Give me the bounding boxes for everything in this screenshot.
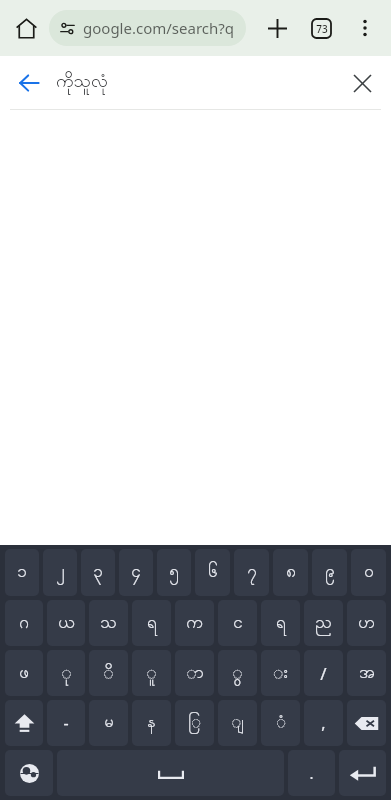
button[interactable]: မ [89, 700, 128, 746]
staticText: ၈ [286, 560, 296, 585]
staticText: ၅ [169, 560, 179, 585]
staticText: ၄ [131, 560, 141, 585]
button[interactable]: Change keyboard [5, 750, 53, 796]
staticText: ၃ [93, 560, 103, 585]
staticText: ံ [276, 711, 286, 735]
button[interactable]: ၈ [273, 549, 308, 596]
button[interactable]: ည [304, 600, 343, 646]
button[interactable]: google.com/search?q [49, 10, 246, 46]
button[interactable]: ံ [261, 700, 300, 746]
button[interactable]: ၃ [81, 549, 115, 596]
button[interactable]: ၀ [351, 549, 386, 596]
button[interactable]: ွ [218, 650, 257, 696]
button[interactable]: More options [343, 6, 387, 50]
button[interactable]: ယ [47, 600, 85, 646]
staticText: အ [359, 661, 375, 686]
staticText: google.com/search?q [83, 18, 234, 38]
staticText: ိ [103, 661, 114, 686]
button[interactable]: / [304, 650, 343, 696]
staticText: င [233, 611, 243, 636]
button[interactable]: . [288, 750, 335, 796]
staticText: ၇ [247, 560, 257, 585]
staticText: ရ [276, 611, 286, 636]
button[interactable]: ၄ [119, 549, 153, 596]
button[interactable]: ၅ [157, 549, 191, 596]
staticText: ြ [188, 711, 201, 735]
staticText: - [63, 712, 69, 734]
staticText: ု [61, 661, 72, 686]
staticText: မ [104, 711, 114, 735]
button[interactable]: အ [347, 650, 386, 696]
staticText: ၆ [208, 560, 218, 585]
staticText: န [147, 711, 156, 735]
staticText: ဖ [19, 661, 29, 686]
staticText: . [309, 763, 314, 783]
button[interactable]: Shift [5, 700, 43, 746]
staticText: ာ [186, 661, 204, 686]
button[interactable]: ြ [175, 700, 214, 746]
button[interactable]: , [304, 700, 343, 746]
button[interactable]: Home [6, 8, 46, 48]
button[interactable]: ၁ [5, 549, 39, 596]
button[interactable]: ျ [218, 700, 257, 746]
button[interactable]: ဖ [5, 650, 43, 696]
staticText: သ [100, 611, 117, 636]
button[interactable]: ၆ [195, 549, 230, 596]
button[interactable]: Enter [339, 750, 386, 796]
button[interactable]: New tab [255, 6, 299, 50]
button[interactable]: ူ [132, 650, 171, 696]
staticText: ွ [232, 661, 243, 686]
button[interactable]: န [132, 700, 171, 746]
staticText: ည [315, 611, 332, 636]
staticText: 73 [316, 22, 328, 36]
button[interactable]: သ [89, 600, 128, 646]
staticText: ၁ [17, 560, 27, 585]
button[interactable]: ဟ [347, 600, 386, 646]
button[interactable]: ာ [175, 650, 214, 696]
staticText: း [273, 661, 288, 686]
staticText: ၉ [325, 560, 335, 585]
button[interactable]: Clear [339, 60, 385, 106]
button[interactable]: ကိုသူလုံ [56, 56, 339, 109]
staticText: ျ [231, 711, 244, 735]
button[interactable]: Backspace [347, 700, 386, 746]
button[interactable]: Tabs, 73 open [299, 6, 343, 50]
staticText: ဟ [358, 611, 375, 636]
button[interactable]: း [261, 650, 300, 696]
button[interactable]: ၇ [234, 549, 269, 596]
button[interactable]: ရ [132, 600, 171, 646]
button[interactable]: ု [47, 650, 85, 696]
button[interactable]: ဂ [5, 600, 43, 646]
staticText: ကိုသူလုံ [56, 69, 108, 96]
button[interactable]: ၉ [312, 549, 347, 596]
button[interactable]: - [47, 700, 85, 746]
staticText: ဂ [19, 611, 29, 636]
staticText: က [186, 611, 203, 636]
staticText: ူ [146, 661, 157, 686]
staticText: ၀ [364, 560, 374, 585]
button[interactable]: ိ [89, 650, 128, 696]
staticText: / [320, 662, 327, 685]
button[interactable]: Back [11, 65, 47, 101]
staticText: ယ [58, 611, 75, 636]
button[interactable]: င [218, 600, 257, 646]
staticText: ရ [147, 611, 157, 636]
staticText: , [321, 712, 326, 734]
button[interactable]: ၂ [43, 549, 77, 596]
staticText: ၂ [56, 560, 65, 585]
button[interactable]: ရ [261, 600, 300, 646]
button[interactable]: က [175, 600, 214, 646]
button[interactable]: Space [57, 750, 284, 796]
